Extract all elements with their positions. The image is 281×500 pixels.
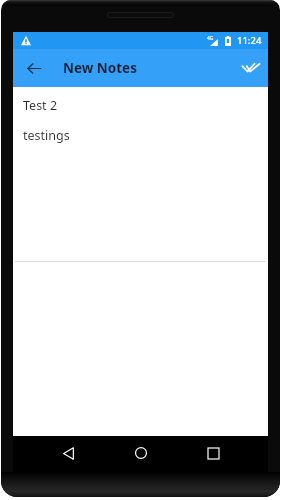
staticText: testings (23, 127, 70, 144)
button[interactable]: Save note (238, 55, 264, 81)
button[interactable]: Back (21, 55, 47, 81)
button[interactable]: Recent apps (196, 437, 230, 471)
button[interactable]: Back (51, 437, 85, 471)
staticText: 4G (207, 35, 214, 42)
staticText: 11:24 (237, 34, 262, 47)
staticText: Test 2 (23, 97, 58, 114)
staticText: New Notes (63, 59, 137, 77)
button[interactable]: Home (124, 437, 158, 471)
